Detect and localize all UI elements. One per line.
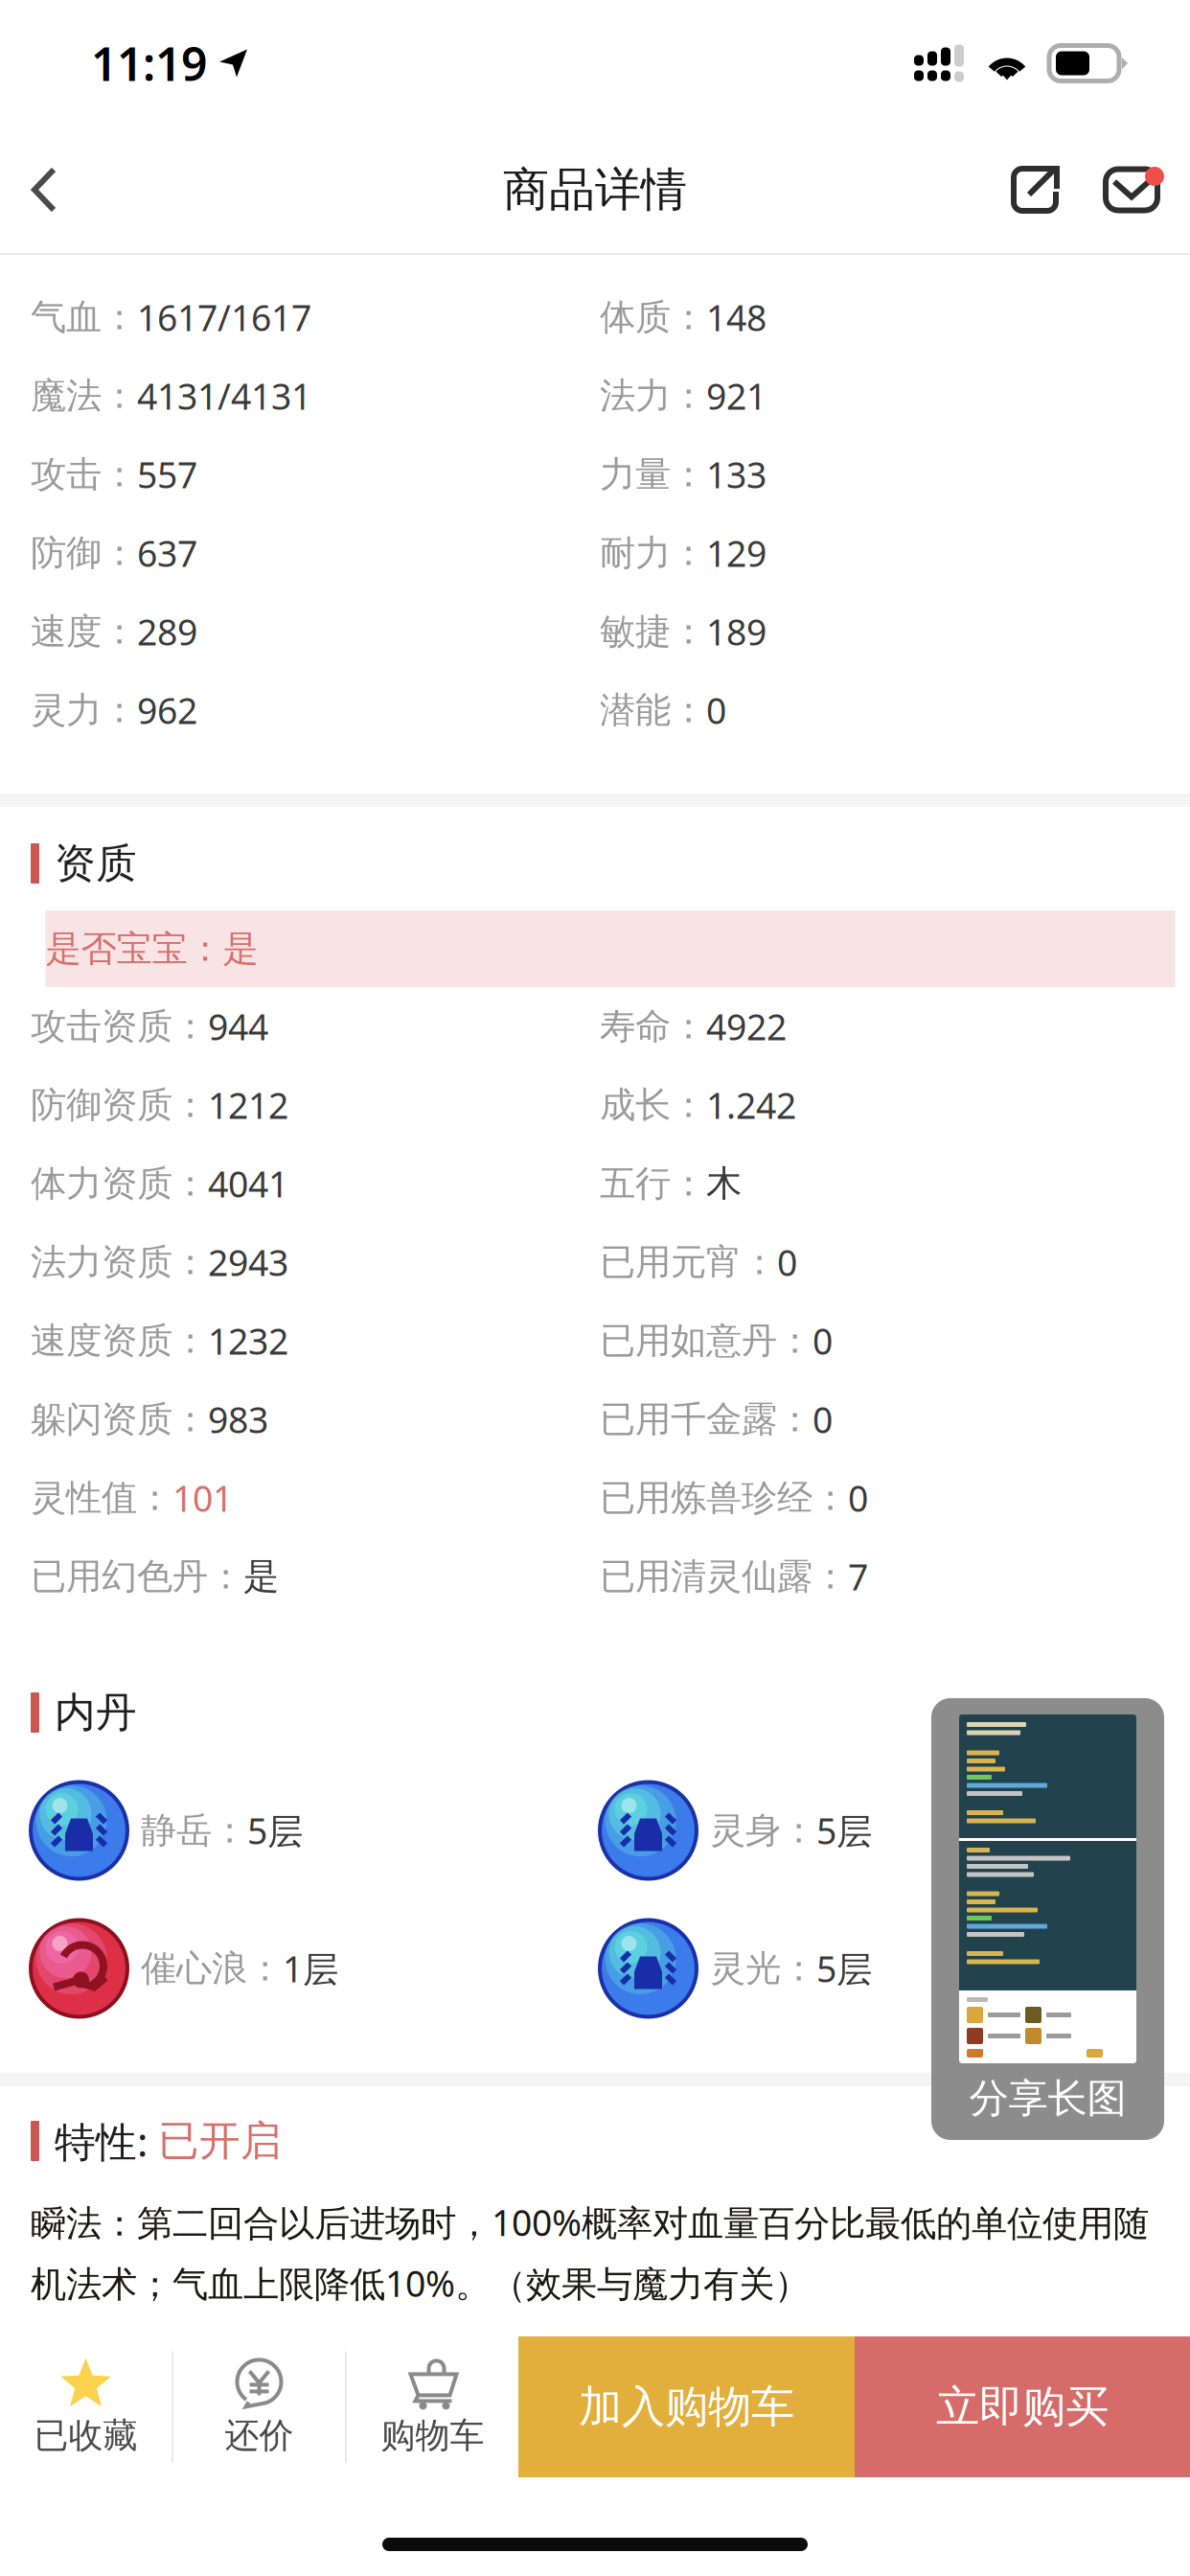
staticText: 1212 [208, 1081, 288, 1129]
staticText: 0 [706, 686, 726, 734]
staticText: 4041 [208, 1160, 288, 1207]
staticText: 灵身： [710, 1808, 816, 1852]
staticText: 特性: [55, 2114, 158, 2168]
staticText: 5层 [247, 1807, 303, 1854]
staticText: 立即购买 [936, 2380, 1109, 2434]
staticText: 魔法： [31, 374, 137, 418]
staticText: 4922 [706, 1003, 787, 1050]
staticText: 已用清灵仙露： [600, 1555, 848, 1598]
staticText: 敏捷： [600, 610, 706, 654]
staticText: 耐力： [600, 531, 706, 575]
staticText: 已开启 [158, 2116, 282, 2166]
staticText: 法力资质： [31, 1240, 208, 1284]
staticText: 已用幻色丹： [31, 1555, 243, 1598]
staticText: 637 [137, 529, 197, 577]
staticText: 已用元宵： [600, 1240, 777, 1284]
staticText: 129 [706, 529, 767, 577]
staticText: 力量： [600, 452, 706, 496]
staticText: 法力： [600, 374, 706, 418]
staticText: 已用千金露： [600, 1397, 812, 1441]
staticText: 133 [706, 451, 767, 498]
staticText: 是否宝宝： [46, 927, 223, 971]
staticText: 1232 [208, 1317, 288, 1364]
button[interactable]: 购物车 [347, 2336, 518, 2477]
staticText: 还价 [225, 2414, 294, 2457]
staticText: 944 [208, 1003, 268, 1050]
staticText: 已收藏 [34, 2414, 137, 2457]
button[interactable]: 分享长图 [931, 1698, 1164, 2140]
staticText: 289 [137, 608, 197, 655]
staticText: 0 [812, 1396, 833, 1443]
button[interactable]: 还价 [173, 2336, 345, 2477]
staticText: 体力资质： [31, 1162, 208, 1206]
staticText: 寿命： [600, 1004, 706, 1048]
staticText: 101 [172, 1474, 233, 1522]
button[interactable]: 立即购买 [855, 2336, 1190, 2477]
staticText: 1617/1617 [137, 293, 311, 341]
staticText: 0 [812, 1317, 833, 1364]
staticText: 557 [137, 451, 197, 498]
staticText: 0 [848, 1474, 868, 1522]
staticText: 加入购物车 [579, 2380, 794, 2434]
staticText: 已用炼兽珍经： [600, 1476, 848, 1520]
staticText: 0 [777, 1238, 797, 1286]
staticText: 1.242 [706, 1081, 796, 1129]
staticText: 速度： [31, 610, 137, 654]
button[interactable]: 返回 [0, 126, 88, 253]
staticText: 静岳： [141, 1808, 247, 1852]
staticText: 躲闪资质： [31, 1397, 208, 1441]
staticText: 攻击： [31, 452, 137, 496]
button[interactable]: 已收藏 [0, 2336, 172, 2477]
button[interactable]: 分享 [990, 126, 1080, 253]
staticText: 983 [208, 1396, 268, 1443]
staticText: 瞬法：第二回合以后进场时，100%概率对血量百分比最低的单位使用随机法术；气血上… [31, 2198, 1149, 2307]
staticText: 已用如意丹： [600, 1319, 812, 1363]
staticText: 921 [706, 372, 767, 420]
staticText: 防御资质： [31, 1083, 208, 1127]
staticText: 体质： [600, 295, 706, 339]
staticText: 内丹 [55, 1687, 137, 1738]
staticText: 7 [848, 1553, 868, 1600]
staticText: 气血： [31, 295, 137, 339]
staticText: 速度资质： [31, 1319, 208, 1363]
staticText: 5层 [816, 1807, 872, 1854]
button[interactable]: 加入购物车 [518, 2336, 855, 2477]
staticText: 攻击资质： [31, 1004, 208, 1048]
staticText: 灵光： [710, 1946, 816, 1990]
staticText: 成长： [600, 1083, 706, 1127]
staticText: 2943 [208, 1238, 288, 1286]
staticText: 防御： [31, 531, 137, 575]
staticText: 灵性值： [31, 1476, 172, 1520]
staticText: 是 [243, 1555, 279, 1598]
button[interactable]: 消息 [1080, 126, 1183, 253]
staticText: 962 [137, 686, 197, 734]
staticText: 灵力： [31, 688, 137, 732]
staticText: 189 [706, 608, 767, 655]
staticText: 5层 [816, 1945, 872, 1992]
staticText: 是 [223, 927, 258, 971]
staticText: 五行： [600, 1162, 706, 1206]
staticText: 木 [706, 1162, 742, 1206]
staticText: 资质 [55, 838, 137, 889]
staticText: 148 [706, 293, 767, 341]
staticText: 11:19 [91, 33, 207, 94]
staticText: 1层 [283, 1945, 338, 1992]
staticText: 购物车 [381, 2414, 484, 2457]
staticText: 潜能： [600, 688, 706, 732]
staticText: 催心浪： [141, 1946, 283, 1990]
staticText: 商品详情 [503, 161, 687, 218]
staticText: 4131/4131 [137, 372, 311, 420]
staticText: 分享长图 [969, 2074, 1126, 2123]
